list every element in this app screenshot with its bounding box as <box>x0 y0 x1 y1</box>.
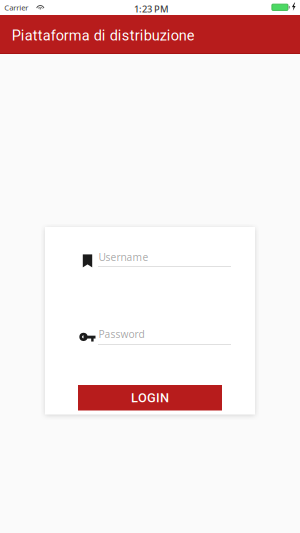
staticText: Password <box>98 327 144 341</box>
staticText: Carrier <box>4 2 28 13</box>
staticText: 1:23 PM <box>134 3 169 15</box>
staticText: Piattaforma di distribuzione <box>12 27 195 44</box>
staticText: LOGIN <box>131 390 169 405</box>
button[interactable]: LOGIN <box>78 385 222 410</box>
staticText: Username <box>98 250 148 264</box>
